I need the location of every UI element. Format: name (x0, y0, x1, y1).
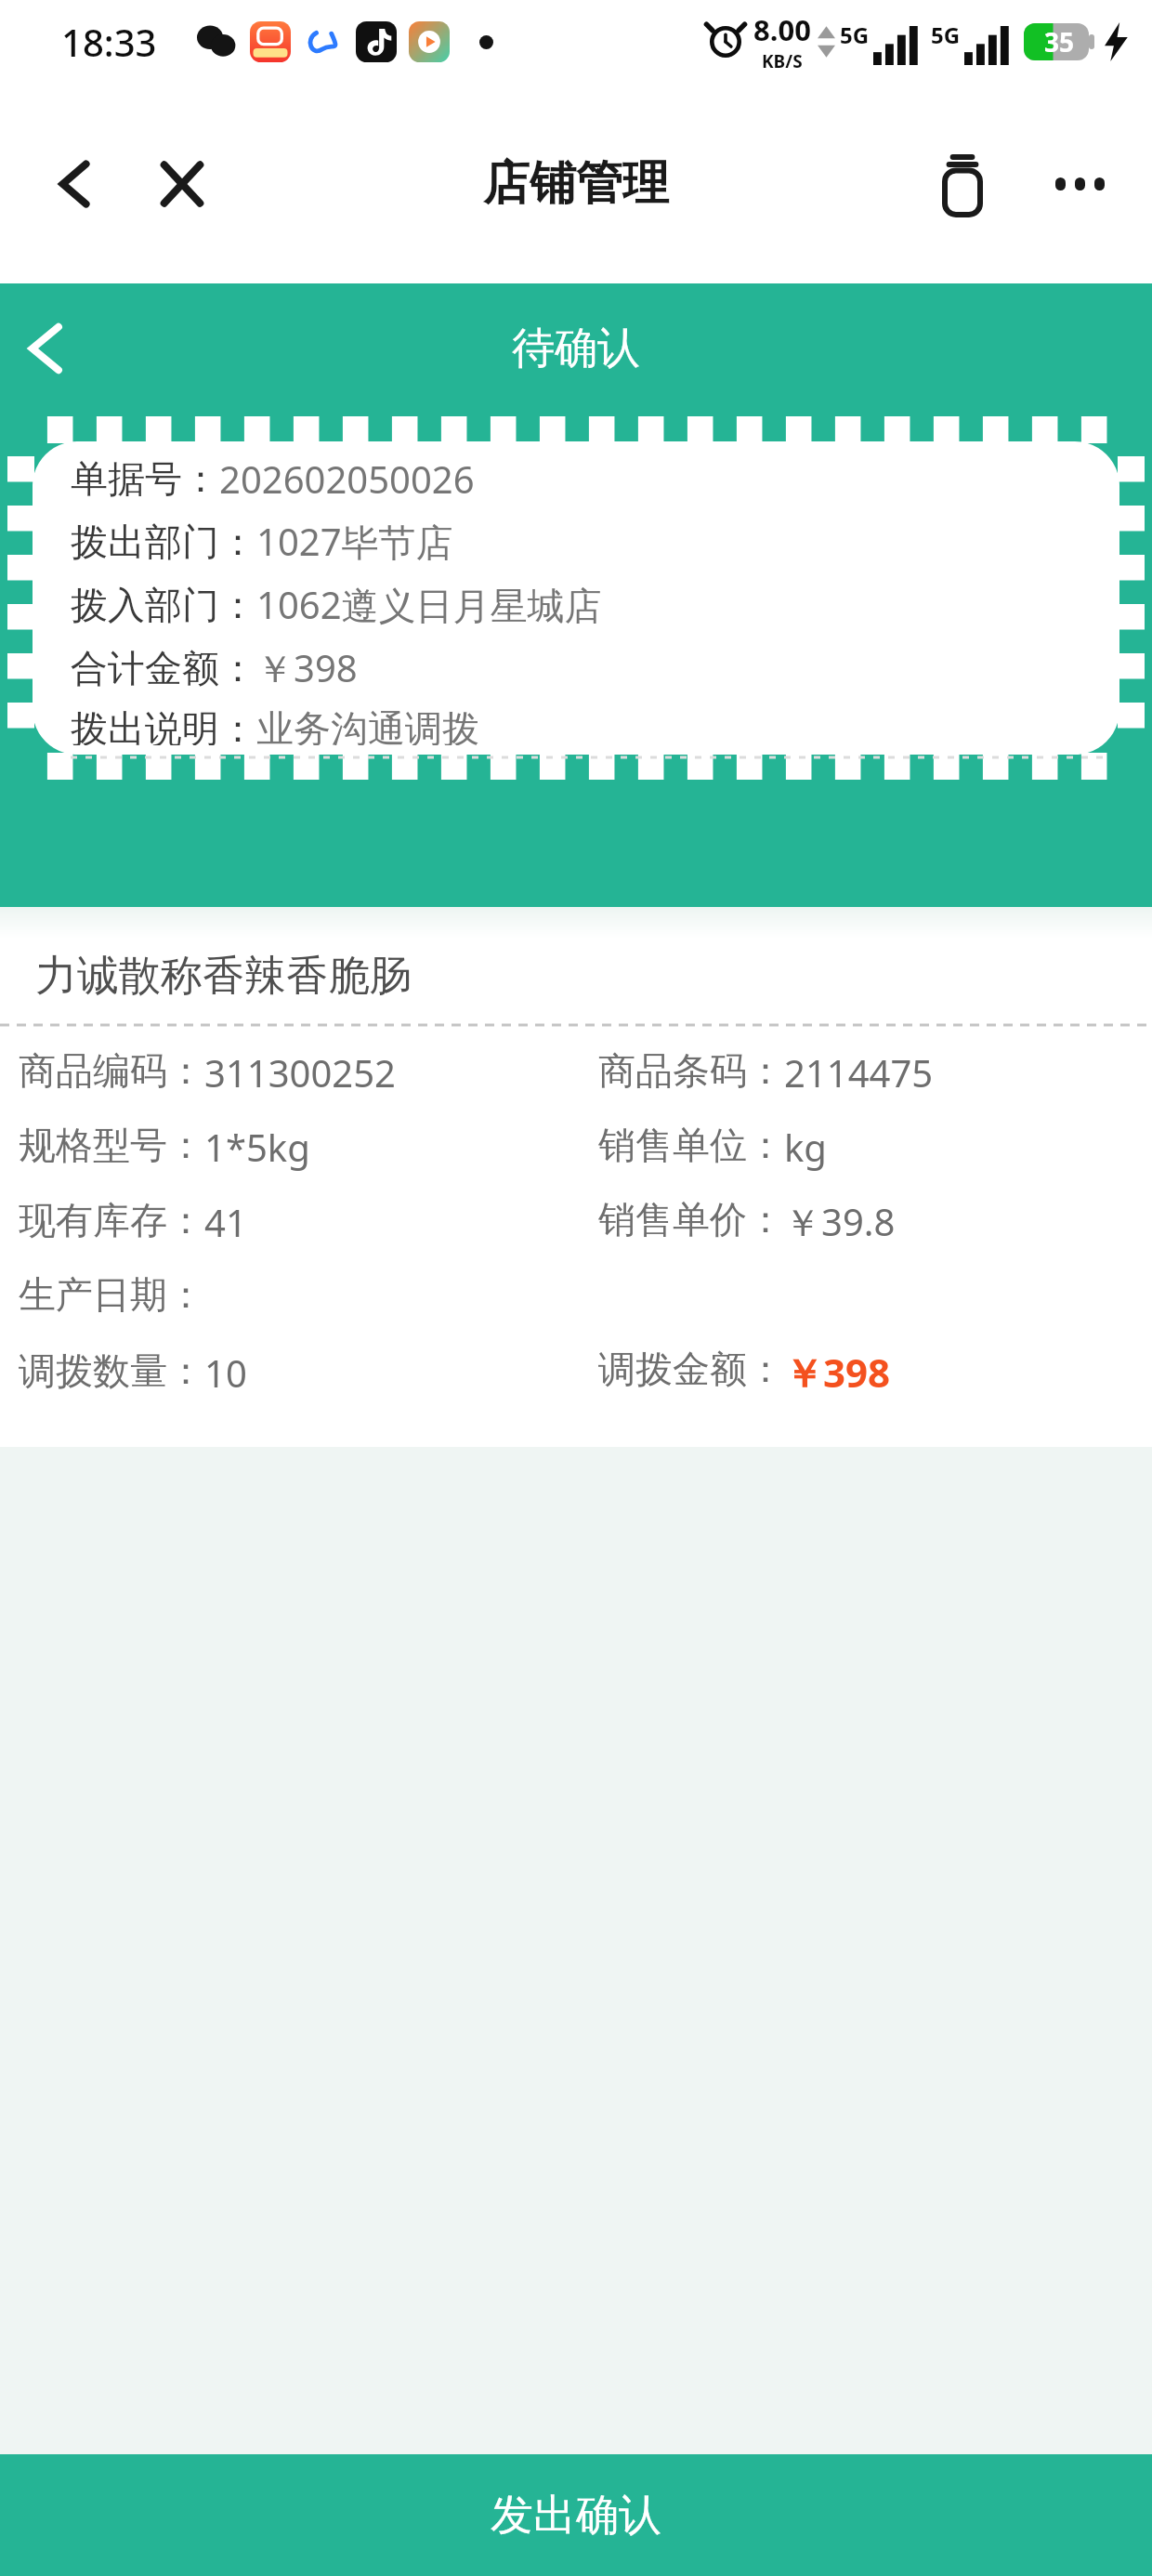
staticText: 销售单位： (598, 1122, 784, 1168)
staticText: ￥398 (256, 642, 358, 693)
button[interactable]: 返回 (33, 141, 119, 227)
staticText: 1062遵义日月星城店 (256, 579, 602, 630)
staticText: 拨出部门： (71, 519, 256, 565)
staticText: 生产日期： (19, 1271, 204, 1318)
staticText: 待确认 (512, 322, 640, 375)
staticText: 8.00 (753, 10, 811, 49)
staticText: 商品编码： (19, 1047, 204, 1094)
staticText: ￥398 (784, 1346, 891, 1399)
button[interactable]: 最近使用 (920, 141, 1005, 227)
staticText: 5G (931, 20, 961, 50)
staticText: 现有库存： (19, 1197, 204, 1243)
staticText: 202602050026 (219, 453, 475, 504)
staticText: 1027毕节店 (256, 516, 453, 567)
staticText: 发出确认 (491, 2489, 661, 2543)
staticText: 41 (204, 1197, 247, 1247)
staticText: 18:33 (61, 17, 157, 67)
staticText: 店铺管理 (483, 154, 669, 213)
button[interactable]: 关闭 (139, 141, 225, 227)
staticText: 10 (204, 1347, 247, 1398)
staticText: 力诚散称香辣香脆肠 (35, 950, 412, 1003)
staticText: 拨出说明： (71, 705, 256, 745)
staticText: 2114475 (784, 1047, 934, 1097)
staticText: 35 (1044, 24, 1075, 59)
staticText: 合计金额： (71, 645, 256, 691)
staticText: 311300252 (204, 1047, 396, 1097)
staticText: 规格型号： (19, 1122, 204, 1168)
staticText: 业务沟通调拨 (256, 705, 479, 745)
staticText: 5G (840, 20, 870, 50)
staticText: kg (784, 1122, 827, 1172)
staticText: 调拨金额： (598, 1346, 784, 1392)
button[interactable]: 返回 (9, 311, 84, 386)
staticText: 商品条码： (598, 1047, 784, 1094)
button[interactable]: 更多 (1037, 141, 1122, 227)
staticText: KB/S (762, 49, 803, 73)
staticText: ￥39.8 (784, 1196, 896, 1247)
staticText: 拨入部门： (71, 582, 256, 628)
staticText: 1*5kg (204, 1122, 310, 1172)
staticText: 单据号： (71, 455, 219, 502)
staticText: 销售单价： (598, 1196, 784, 1242)
staticText: 调拨数量： (19, 1347, 204, 1394)
button[interactable]: 发出确认 (0, 2454, 1152, 2576)
